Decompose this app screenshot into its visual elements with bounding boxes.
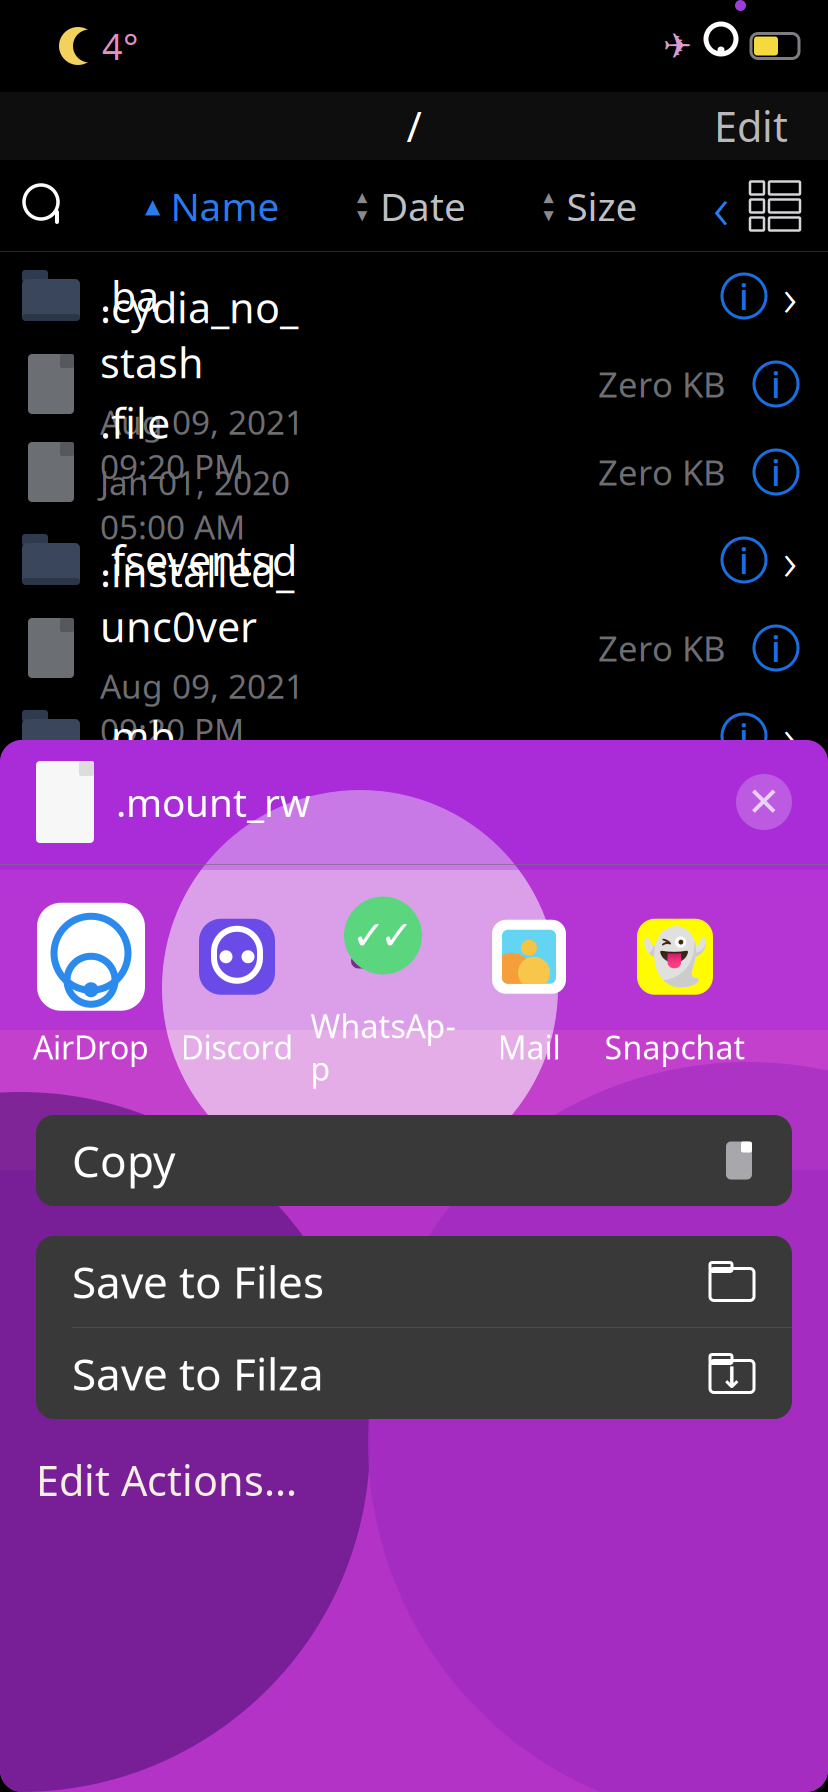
staticText: i xyxy=(771,624,781,672)
button[interactable]: ▲ xyxy=(532,176,643,236)
button[interactable]: Save to Files xyxy=(36,1236,792,1328)
button[interactable]: Save to Filza xyxy=(36,1328,792,1419)
staticText: .mount_rw xyxy=(116,776,310,828)
button[interactable]: ✓ xyxy=(310,880,456,1089)
button[interactable]: .fseventsd xyxy=(0,516,828,604)
button[interactable]: View options xyxy=(738,175,812,237)
staticText: / xyxy=(406,99,421,153)
staticText: ▼ xyxy=(543,207,553,223)
staticText: ‹ xyxy=(713,165,729,247)
staticText: ✈ xyxy=(663,26,692,66)
staticText: ▲ xyxy=(145,195,160,217)
staticText: › xyxy=(783,701,797,771)
button[interactable]: Back xyxy=(704,178,738,234)
button[interactable]: .ba xyxy=(0,252,828,340)
staticText: Edit Actions... xyxy=(36,1453,297,1507)
staticText: ✓ xyxy=(380,913,414,958)
staticText: i xyxy=(771,360,781,408)
staticText: .ba xyxy=(100,269,159,323)
button[interactable]: .cydia_no_stash xyxy=(0,340,828,428)
staticText: ✓ xyxy=(352,913,386,958)
staticText: Size xyxy=(566,180,637,232)
staticText: .fseventsd xyxy=(100,533,297,587)
button[interactable]: Edit Actions... xyxy=(0,1437,828,1523)
button[interactable]: .mb xyxy=(0,692,828,780)
staticText: ▼ xyxy=(357,207,367,223)
button[interactable]: Mail xyxy=(456,902,602,1068)
staticText: ▲ xyxy=(543,189,553,204)
staticText: › xyxy=(783,525,797,595)
button[interactable]: .file xyxy=(0,428,828,516)
staticText: › xyxy=(783,261,797,331)
staticText: .cydia_no_stash xyxy=(100,280,298,390)
staticText: AirDrop xyxy=(33,1026,149,1068)
staticText: Save to Files xyxy=(72,1252,324,1311)
staticText: Aug 09, 2021 09:20 PM xyxy=(100,664,304,752)
staticText: Discord xyxy=(180,1026,293,1068)
staticText: .file xyxy=(100,395,170,450)
staticText: Zero KB xyxy=(598,361,726,407)
staticText: Mail xyxy=(497,1026,560,1068)
staticText: .mb xyxy=(100,709,175,763)
staticText: ▲ xyxy=(357,189,367,204)
staticText: ↓ xyxy=(719,1361,744,1394)
button[interactable]: Discord xyxy=(164,902,310,1068)
staticText: 4° xyxy=(102,22,138,70)
button[interactable]: Copy xyxy=(36,1115,792,1206)
button[interactable]: ▲ xyxy=(136,176,285,236)
staticText: 👻 xyxy=(642,926,708,987)
staticText: Name xyxy=(170,180,279,232)
staticText: Date xyxy=(380,180,466,232)
button[interactable]: Search xyxy=(14,175,76,237)
button[interactable]: Close xyxy=(732,770,796,834)
staticText: Jan 01, 2020 05:00 AM xyxy=(100,460,290,549)
staticText: Aug 09, 2021 09:20 PM xyxy=(100,400,304,488)
staticText: WhatsApp xyxy=(310,1004,455,1089)
staticText: i xyxy=(739,712,749,760)
staticText: Save to Filza xyxy=(72,1344,324,1403)
staticText: ✕ xyxy=(747,779,781,825)
staticText: i xyxy=(739,536,749,584)
button[interactable]: AirDrop xyxy=(18,902,164,1068)
button[interactable]: ▲ xyxy=(346,176,472,236)
staticText: Snapchat xyxy=(604,1026,745,1068)
staticText: Zero KB xyxy=(598,449,726,495)
button[interactable]: Edit xyxy=(696,89,806,163)
staticText: Edit xyxy=(714,99,788,153)
button[interactable]: .installed_unc0ver xyxy=(0,604,828,692)
staticText: Copy xyxy=(72,1131,175,1190)
staticText: i xyxy=(771,448,781,496)
button[interactable]: 👻 xyxy=(602,902,748,1068)
staticText: .installed_unc0ver xyxy=(100,544,294,654)
staticText: Zero KB xyxy=(598,625,726,671)
staticText: i xyxy=(739,272,749,320)
